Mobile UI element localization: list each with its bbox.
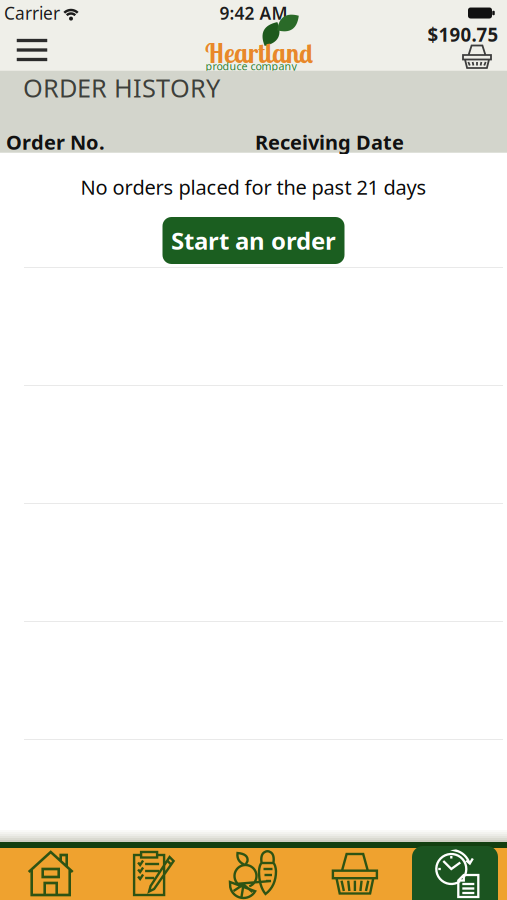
button[interactable]: [462, 44, 492, 69]
button[interactable]: [203, 848, 304, 900]
button[interactable]: [10, 32, 54, 68]
staticText: Start an order: [171, 225, 336, 256]
staticText: ORDER HISTORY: [23, 71, 220, 104]
staticText: Order No.: [6, 129, 105, 155]
button[interactable]: [101, 848, 203, 900]
staticText: $190.75: [427, 22, 498, 47]
staticText: Receiving Date: [255, 129, 404, 155]
button[interactable]: [304, 848, 406, 900]
staticText: Heartland: [205, 36, 313, 70]
staticText: No orders placed for the past 21 days: [80, 174, 426, 200]
staticText: produce company: [205, 59, 296, 73]
button[interactable]: [0, 848, 101, 900]
button[interactable]: [406, 848, 507, 900]
staticText: 9:42 AM: [219, 1, 287, 24]
staticText: Carrier: [4, 1, 60, 24]
button[interactable]: Start an order: [162, 217, 344, 264]
